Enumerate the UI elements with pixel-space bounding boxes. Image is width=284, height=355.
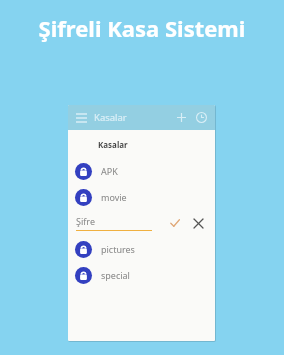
button[interactable]: Menu <box>74 111 88 125</box>
button[interactable]: movie <box>68 184 215 210</box>
button[interactable]: special <box>68 262 215 288</box>
button[interactable]: APK <box>68 158 215 184</box>
staticText: APK <box>101 165 118 177</box>
button[interactable]: Şifre <box>68 210 215 236</box>
button[interactable]: Add <box>174 110 189 125</box>
staticText: Kasalar <box>94 111 127 124</box>
staticText: special <box>101 269 130 281</box>
button[interactable]: pictures <box>68 236 215 262</box>
staticText: Kasalar <box>98 139 128 150</box>
staticText: pictures <box>101 243 135 255</box>
button[interactable]: Cancel <box>189 214 207 232</box>
staticText: Şifre <box>76 215 95 227</box>
button[interactable]: Confirm <box>166 214 184 232</box>
staticText: Şifreli Kasa Sistemi <box>0 13 284 43</box>
staticText: movie <box>101 191 127 203</box>
button[interactable]: History <box>194 110 209 125</box>
